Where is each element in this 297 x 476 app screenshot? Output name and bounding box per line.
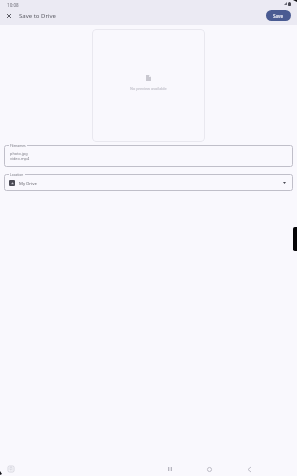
button[interactable]: My Drive (4, 174, 293, 191)
staticText: No preview available (130, 86, 167, 91)
staticText: Save to Drive (19, 12, 56, 20)
button[interactable]: Recents (164, 463, 176, 475)
button[interactable]: Home (203, 463, 215, 475)
staticText: Filenames (10, 143, 26, 147)
button[interactable]: Close (3, 10, 14, 21)
staticText: photo.jpg (10, 151, 28, 156)
staticText: 10:08 (7, 2, 19, 8)
staticText: video.mp4 (10, 156, 30, 161)
button[interactable]: Back (243, 463, 255, 475)
staticText: Location (10, 172, 24, 176)
button[interactable]: Save (266, 10, 291, 21)
staticText: Save (273, 13, 284, 19)
staticText: My Drive (19, 180, 37, 186)
button[interactable]: Screenshot (5, 463, 17, 475)
